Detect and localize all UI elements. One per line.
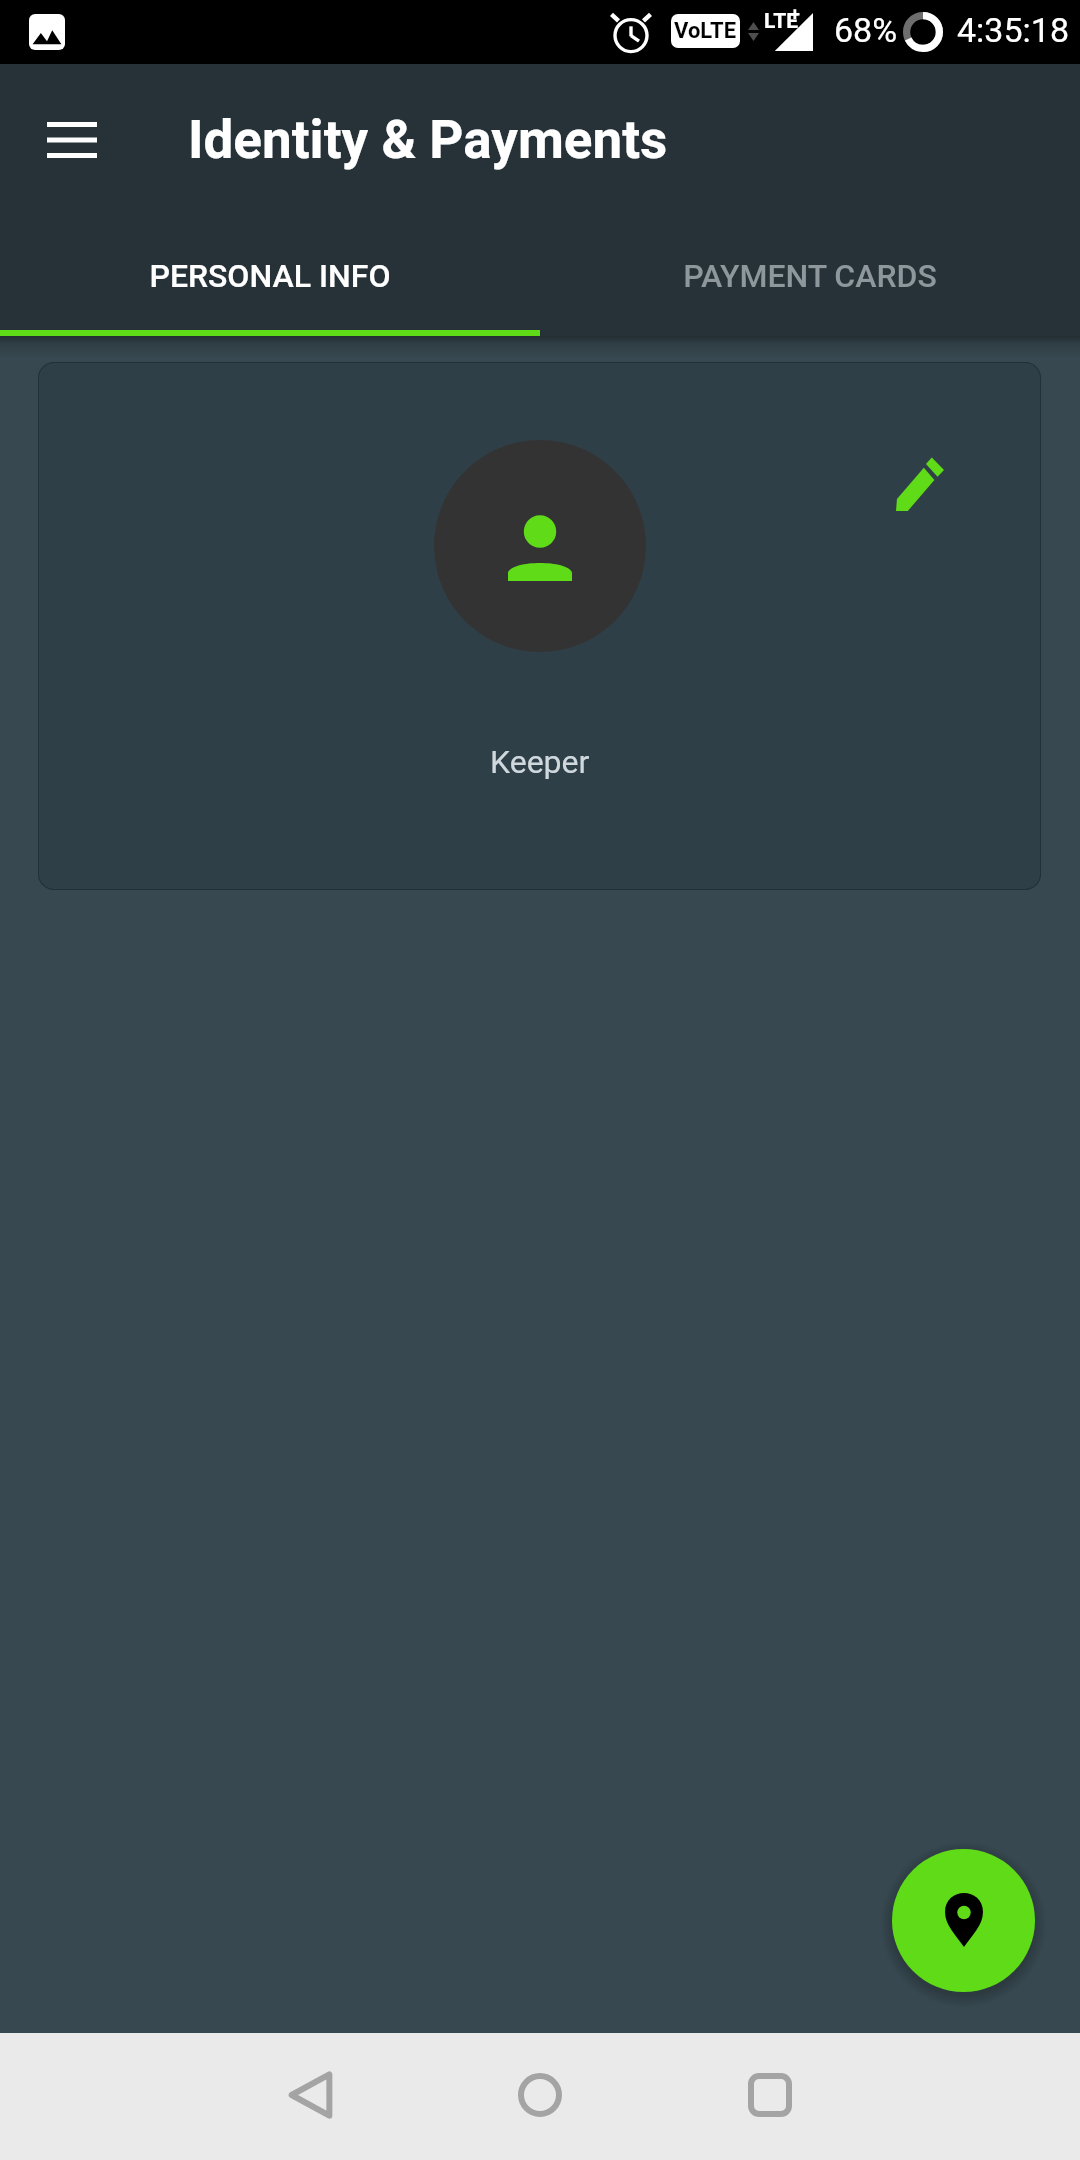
button[interactable]: PERSONAL INFO <box>0 216 540 336</box>
staticText: 68% <box>834 10 898 50</box>
staticText: PAYMENT CARDS <box>683 257 937 295</box>
staticText: PERSONAL INFO <box>149 257 391 295</box>
button[interactable]: Open navigation menu <box>42 110 102 170</box>
staticText: LTE <box>764 9 799 34</box>
button[interactable]: Edit profile <box>38 362 1041 890</box>
button[interactable]: Back <box>250 2035 370 2155</box>
staticText: + <box>790 3 800 24</box>
button[interactable]: Edit profile <box>888 451 952 515</box>
button[interactable]: Recent apps <box>710 2035 830 2155</box>
staticText: VoLTE <box>674 18 737 44</box>
staticText: Identity & Payments <box>188 109 668 171</box>
staticText: 4:35:18 <box>957 10 1070 50</box>
staticText: Keeper <box>490 743 590 781</box>
button[interactable]: Home <box>480 2035 600 2155</box>
button[interactable]: PAYMENT CARDS <box>540 216 1080 336</box>
button[interactable]: Show location <box>892 1849 1035 1992</box>
